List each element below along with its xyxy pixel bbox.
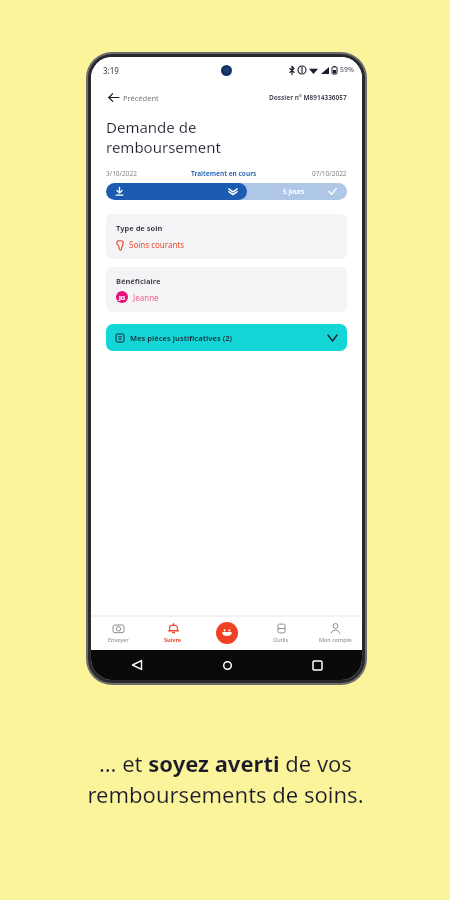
staticText: Mes pièces justificatives (2) [130,333,233,343]
button[interactable]: Suivre [146,616,200,650]
button[interactable]: Retour [126,654,148,676]
button[interactable]: Mon compte [308,616,362,650]
button[interactable]: Action principale [216,622,238,644]
staticText: 5 jours [283,187,305,196]
staticText: JO [119,294,126,301]
staticText: 07/10/2022 [312,169,347,178]
button[interactable]: Envoyer [91,616,146,650]
staticText: Envoyer [108,636,129,643]
button[interactable]: Accueil [216,654,238,676]
staticText: Type de soin [116,223,163,233]
staticText: Dossier n° M8914336057 [269,93,347,102]
staticText: … et soyez averti de vos remboursements … [87,748,364,810]
staticText: 3:19 [103,65,119,76]
staticText: Précédent [123,93,159,103]
button[interactable]: Type de soin [106,214,347,259]
button[interactable]: Précédent [106,88,161,107]
button[interactable]: Mes pièces justificatives (2) [106,324,347,351]
button[interactable]: Applications récentes [306,654,328,676]
staticText: Jeanne [133,292,159,303]
staticText: Suivre [164,636,182,643]
staticText: Soins courants [129,239,185,250]
staticText: Outils [273,636,289,643]
staticText: Mon compte [319,636,352,643]
staticText: 59% [340,65,354,75]
staticText: Demande de remboursement [106,117,221,157]
button[interactable]: Outils [254,616,308,650]
staticText: Traitement en cours [191,169,257,178]
staticText: 3/10/2022 [106,169,137,178]
button[interactable]: Bénéficiaire [106,267,347,312]
staticText: Bénéficiaire [116,276,161,286]
